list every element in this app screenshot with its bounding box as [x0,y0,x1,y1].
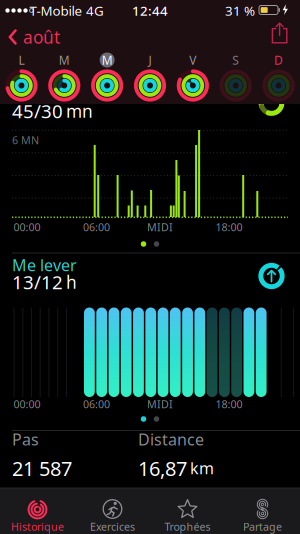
staticText: 06:00 [83,220,110,234]
staticText: 00:00 [13,220,40,234]
button[interactable]: Exercices [75,488,150,534]
button[interactable]: Jeudi [132,67,168,103]
staticText: 18:00 [215,220,242,234]
staticText: 6 MN [12,133,39,147]
staticText: 45/30 [12,99,63,123]
staticText: 21 587 [12,455,72,481]
staticText: Me lever [12,254,77,276]
staticText: 12:44 [132,2,168,19]
staticText: Distance [138,429,204,450]
button[interactable]: Samedi [218,67,254,103]
staticText: Trophées [164,519,210,534]
staticText: MIDI [147,220,173,234]
staticText: 18:00 [215,397,242,411]
staticText: Historique [11,519,64,534]
button[interactable]: Historique [0,488,75,534]
staticText: 31 % [225,2,255,19]
staticText: M [59,52,70,68]
button[interactable]: Mardi [46,67,82,103]
staticText: D [274,52,283,68]
staticText: h [66,270,77,293]
button[interactable]: Mercredi [89,67,125,103]
button[interactable]: Trophées [150,488,225,534]
button[interactable]: Dimanche [261,67,297,103]
staticText: Partage [243,519,282,534]
staticText: J [148,52,151,68]
button[interactable]: Partage [225,488,300,534]
staticText: mn [66,99,93,122]
staticText: S [232,52,239,68]
staticText: M [102,52,113,68]
staticText: MIDI [147,397,173,411]
staticText: 06:00 [83,397,110,411]
staticText: V [189,52,196,68]
staticText: km [190,457,214,479]
staticText: 13/12 [12,270,63,294]
staticText: 4G [86,2,104,19]
staticText: T-Mobile [29,2,82,19]
button[interactable]: Me lever [255,260,287,292]
staticText: Pas [12,429,39,450]
staticText: 00:00 [13,397,40,411]
button[interactable]: Lundi [3,67,39,103]
button[interactable]: Retour août [8,22,88,52]
staticText: 16,87 [138,455,187,481]
button[interactable]: Vendredi [175,67,211,103]
staticText: Exercices [90,519,135,534]
staticText: août [23,25,60,48]
button[interactable]: Partager [264,19,294,49]
staticText: L [18,52,24,68]
